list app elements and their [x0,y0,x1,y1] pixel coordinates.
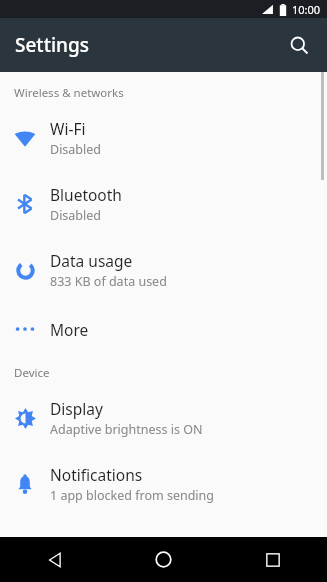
button[interactable]: Back [0,537,109,582]
button[interactable]: More [0,303,327,355]
button[interactable]: Wi-Fi [0,105,327,171]
staticText: Display [50,398,103,419]
button[interactable]: Recents [218,537,327,582]
staticText: Device [14,365,50,381]
staticText: 10:00 [292,2,321,17]
staticText: Wireless & networks [14,85,124,101]
staticText: Disabled [50,141,102,158]
staticText: Settings [15,32,89,58]
button[interactable]: Data usage [0,237,327,303]
button[interactable]: Notifications [0,451,327,517]
staticText: Bluetooth [50,184,122,205]
staticText: Adaptive brightness is ON [50,421,203,438]
button[interactable]: Search [277,23,321,67]
button[interactable]: Bluetooth [0,171,327,237]
staticText: 1 app blocked from sending [50,487,214,504]
staticText: Data usage [50,250,133,271]
staticText: 833 KB of data used [50,273,167,290]
button[interactable]: Home [109,537,218,582]
staticText: Wi-Fi [50,118,86,139]
staticText: Notifications [50,464,143,485]
staticText: More [50,319,89,340]
button[interactable]: Display [0,385,327,451]
staticText: Disabled [50,207,102,224]
